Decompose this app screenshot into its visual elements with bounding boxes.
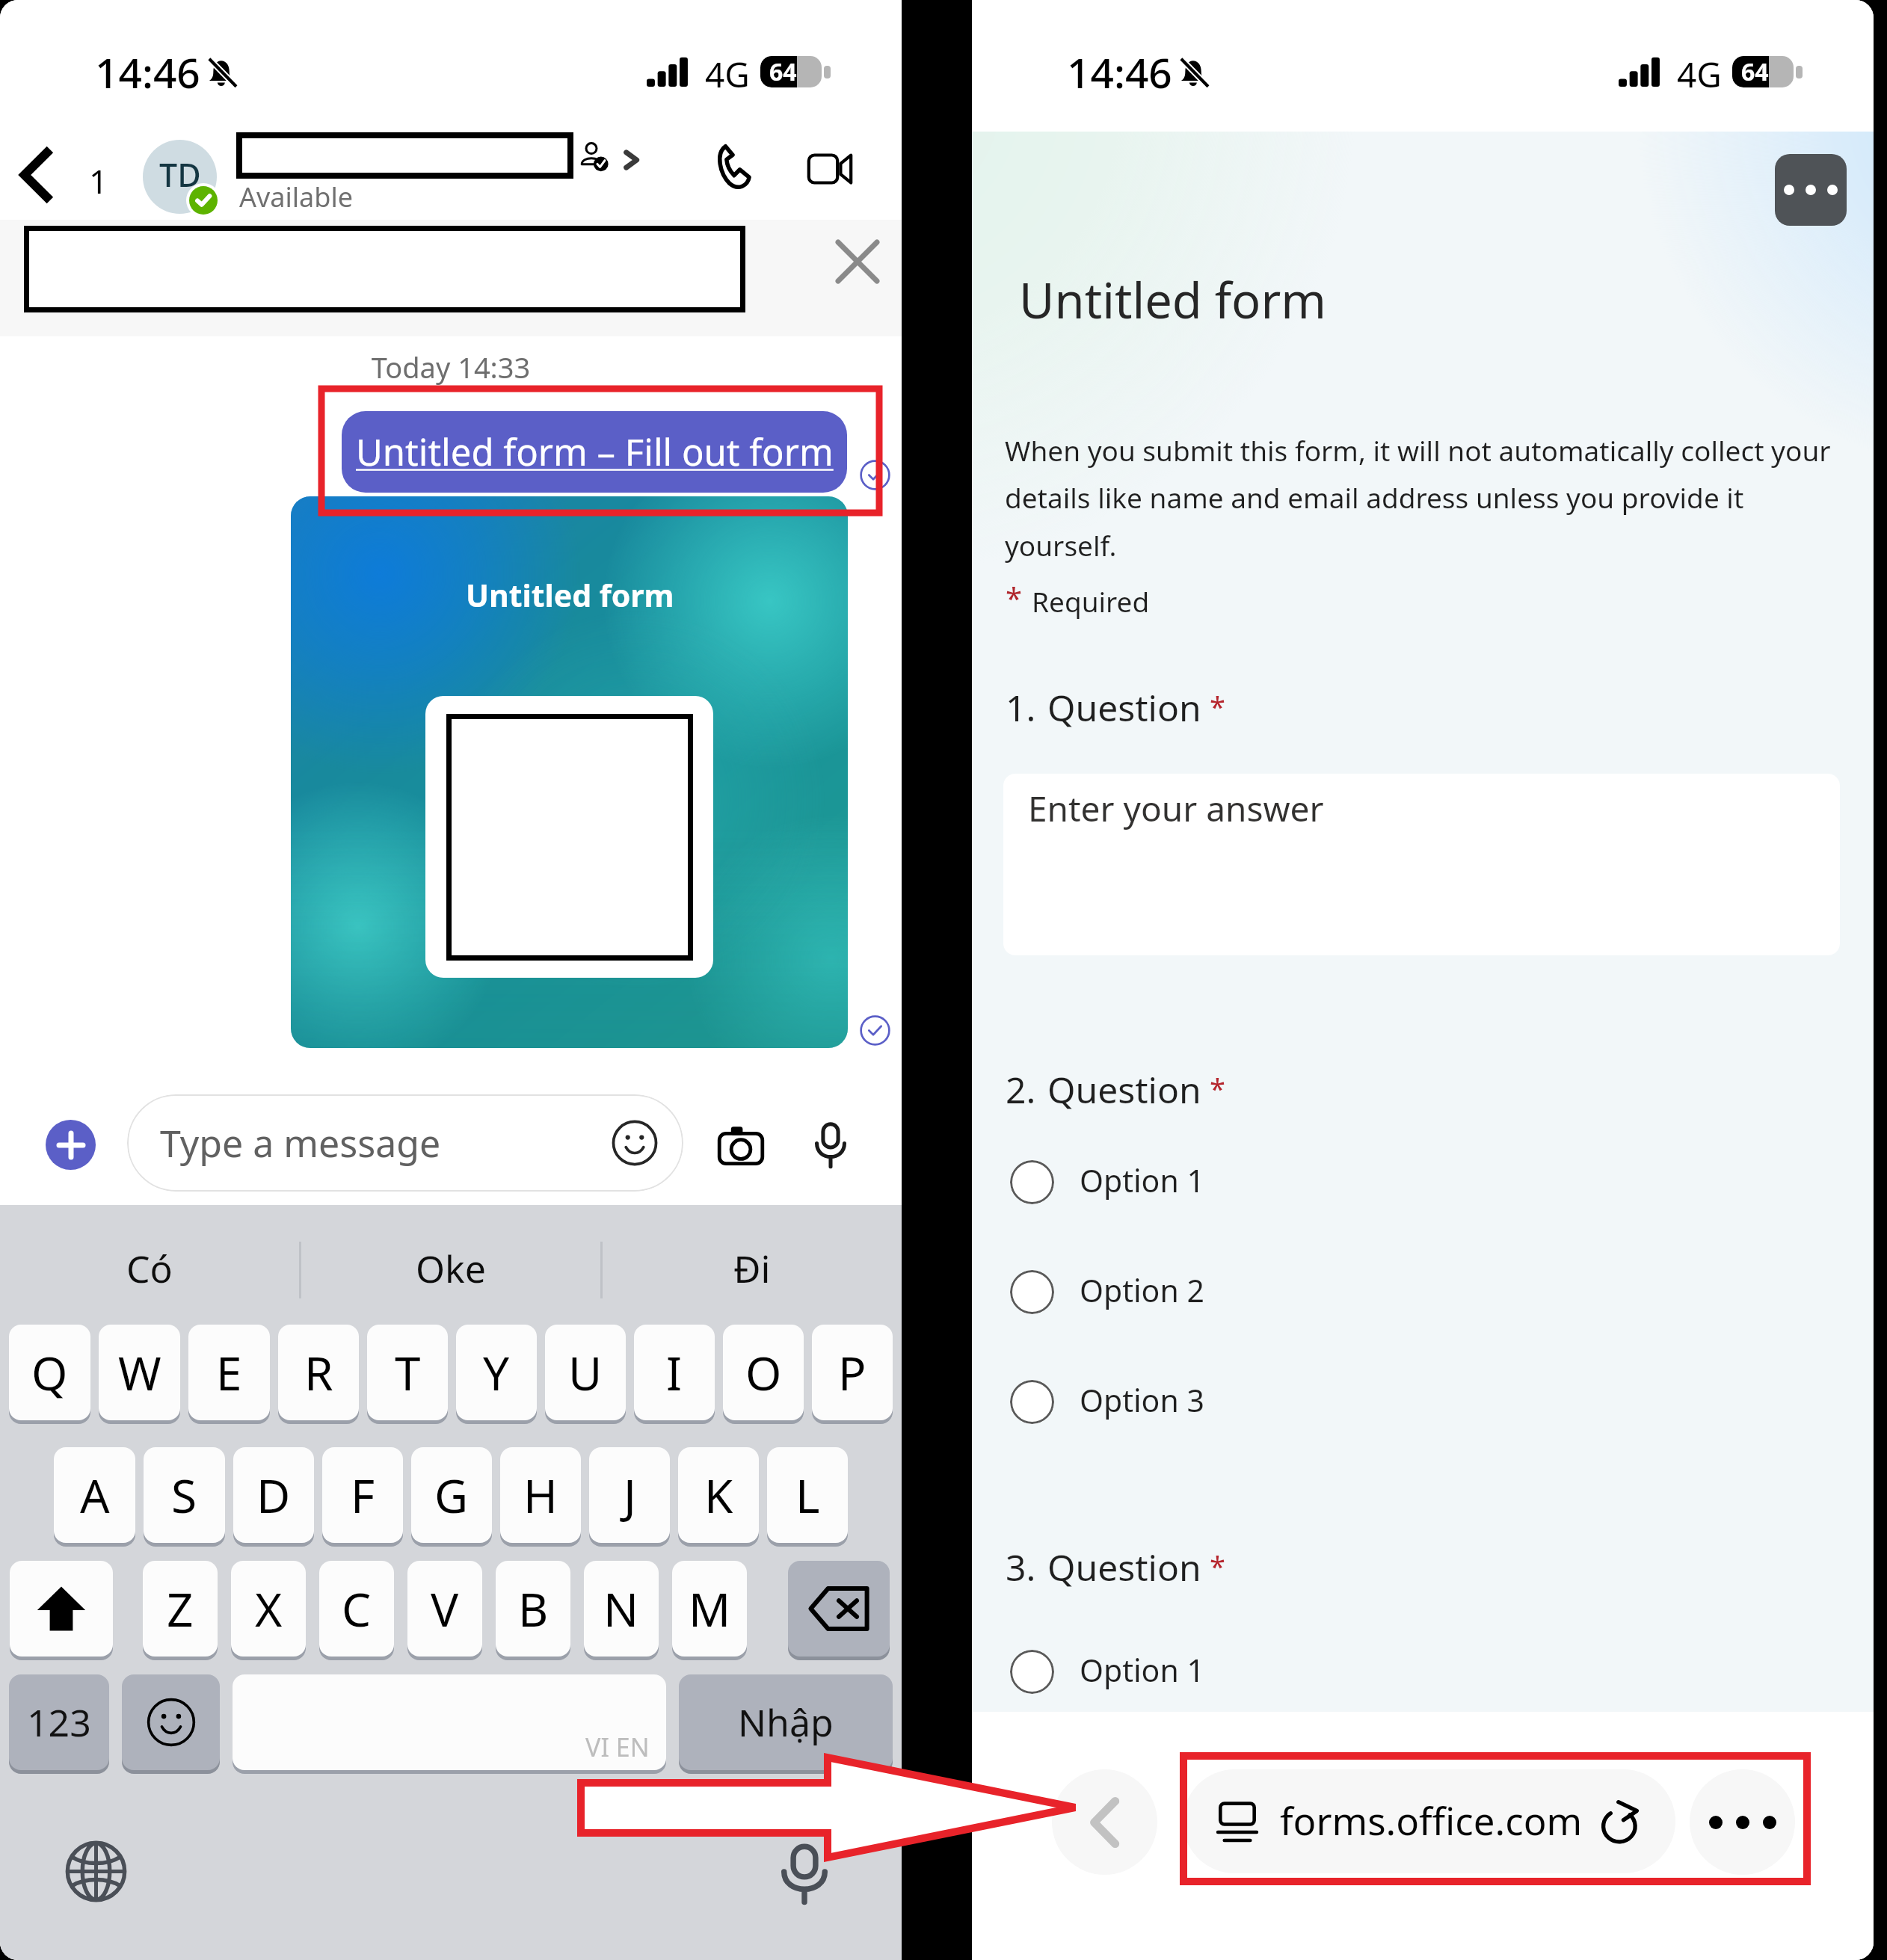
staticText: * [1210,1547,1225,1585]
button[interactable]: Option 1 [972,1141,1874,1223]
button[interactable]: Type a message [127,1094,683,1192]
button[interactable]: C [319,1561,394,1657]
button[interactable]: K [678,1447,759,1543]
button[interactable]: N [584,1561,659,1657]
staticText: Question [1047,683,1201,732]
staticText: R [304,1341,333,1404]
staticText: Enter your answer [1028,785,1324,832]
button[interactable]: VI EN [233,1674,666,1770]
staticText: * [1210,1069,1225,1108]
button[interactable]: Oke [301,1223,600,1316]
staticText: J [624,1464,636,1526]
button[interactable]: J [589,1447,670,1543]
button[interactable]: forms.office.com [1183,1769,1675,1873]
button[interactable]: Language [56,1831,135,1911]
button[interactable]: Z [143,1561,218,1657]
staticText: 4G [1677,51,1722,98]
button[interactable]: Close [822,226,893,298]
staticText: D [256,1464,291,1526]
staticText: W [118,1341,161,1404]
button[interactable]: Enter your answer [1003,774,1840,955]
staticText: Question [1047,1065,1201,1114]
staticText: Z [167,1577,194,1640]
button[interactable]: A [54,1447,135,1543]
staticText: S [171,1464,197,1526]
staticText: Oke [416,1243,486,1294]
button[interactable]: Emoji [122,1674,220,1770]
button[interactable]: O [723,1325,804,1420]
staticText: Option 1 [1080,1649,1204,1691]
staticText: Y [483,1341,510,1404]
staticText: K [704,1464,733,1526]
staticText: G [434,1464,469,1526]
staticText: Option 3 [1080,1379,1204,1421]
staticText: 14:46 [1067,44,1172,100]
button[interactable]: B [496,1561,570,1657]
button[interactable]: G [411,1447,492,1543]
staticText: 2. [1006,1065,1036,1114]
button[interactable]: Đi [603,1223,902,1316]
staticText: F [351,1464,375,1526]
button[interactable]: More [1690,1769,1795,1875]
button[interactable]: Camera [707,1111,775,1180]
button[interactable]: Y [456,1325,537,1420]
button[interactable]: Back [1052,1769,1157,1875]
staticText: E [216,1341,242,1404]
button[interactable]: Add attachment [46,1120,96,1170]
staticText: 1 [89,158,108,203]
button[interactable]: E [188,1325,270,1420]
button[interactable]: P [812,1325,893,1420]
staticText: 3. [1006,1543,1036,1591]
staticText: B [518,1577,549,1640]
button[interactable]: L [767,1447,848,1543]
staticText: 64 [769,56,797,87]
button[interactable]: T [367,1325,448,1420]
button[interactable]: Backspace [788,1561,890,1657]
staticText: C [342,1577,372,1640]
button[interactable]: Có [0,1223,299,1316]
staticText: forms.office.com [1280,1794,1583,1846]
staticText: * [1006,577,1023,617]
button[interactable]: W [99,1325,180,1420]
staticText: VI EN [585,1730,650,1764]
button[interactable]: Q [9,1325,90,1420]
button[interactable]: X [231,1561,306,1657]
staticText: P [838,1341,866,1404]
button[interactable]: More options [1775,154,1847,226]
staticText: Option 2 [1080,1269,1204,1311]
staticText: Nhập [738,1697,834,1748]
button[interactable]: R [278,1325,359,1420]
staticText: Question [1047,1543,1201,1591]
button[interactable]: D [233,1447,314,1543]
button[interactable]: Microphone [796,1111,865,1180]
staticText: Untitled form [1019,267,1326,333]
button[interactable]: Call [695,130,767,202]
button[interactable]: I [634,1325,715,1420]
staticText: I [666,1341,683,1404]
staticText: Q [31,1341,68,1404]
button[interactable]: Shift [10,1561,113,1657]
button[interactable]: 123 [9,1674,109,1770]
button[interactable]: Option 3 [972,1360,1874,1443]
button[interactable]: V [407,1561,482,1657]
button[interactable]: S [144,1447,225,1543]
button[interactable]: Untitled form [291,496,848,1048]
staticText: H [523,1464,558,1526]
button[interactable]: Untitled form – Fill out form [342,411,847,493]
button[interactable]: Voice input [765,1834,844,1914]
button[interactable]: Option 1 [972,1630,1874,1713]
button[interactable]: Video call [794,133,866,205]
button[interactable]: Back [4,136,87,218]
staticText: Required [1032,582,1150,620]
staticText: 64 [1741,56,1769,87]
staticText: Untitled form – Fill out form [356,427,834,477]
button[interactable]: U [545,1325,626,1420]
button[interactable]: F [322,1447,403,1543]
button[interactable]: M [672,1561,747,1657]
button[interactable]: Nhập [679,1674,893,1770]
staticText: 1. [1006,683,1036,732]
button[interactable]: H [500,1447,581,1543]
staticText: Untitled form [466,574,674,616]
staticText: * [1210,687,1225,726]
button[interactable]: Option 2 [972,1251,1874,1333]
